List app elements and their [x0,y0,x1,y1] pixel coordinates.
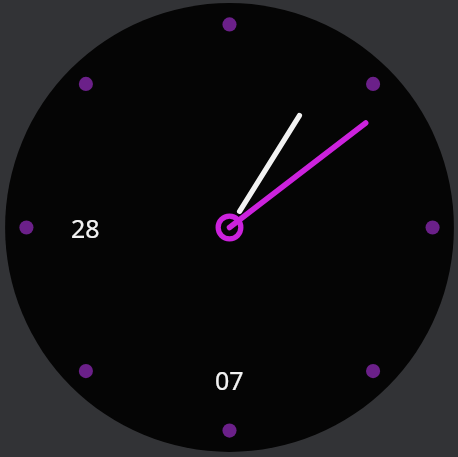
button[interactable]: Analog watch face [0,0,458,457]
staticText: 07 [215,363,244,397]
button[interactable]: 28 [59,211,111,245]
staticText: 28 [71,211,100,245]
button[interactable]: 07 [203,363,255,397]
